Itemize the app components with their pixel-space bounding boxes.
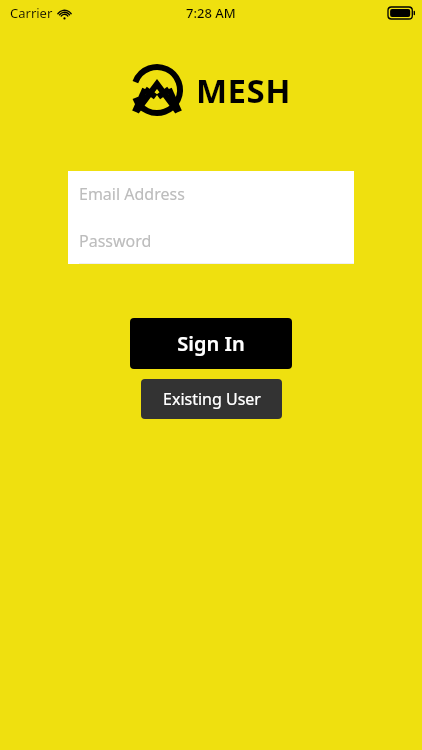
button[interactable]: Existing User [141, 379, 282, 419]
staticText: 7:28 AM [186, 4, 236, 22]
staticText: MESH [196, 68, 292, 113]
staticText: Carrier [10, 4, 53, 22]
button[interactable]: Email Address [68, 171, 354, 217]
staticText: Password [79, 230, 152, 252]
staticText: Sign In [177, 330, 245, 357]
button[interactable]: Sign In [130, 318, 292, 369]
button[interactable]: Password [68, 217, 354, 264]
staticText: Existing User [163, 388, 261, 410]
staticText: Email Address [79, 183, 185, 205]
